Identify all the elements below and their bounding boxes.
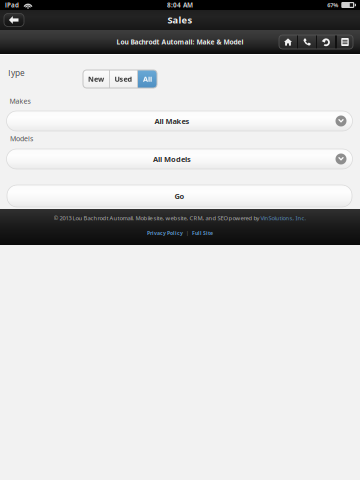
- button[interactable]: Home: [279, 35, 297, 49]
- button[interactable]: Menu: [337, 35, 353, 49]
- staticText: Lou Bachrodt Automall: Make & Model: [116, 37, 243, 47]
- staticText: All: [143, 74, 152, 84]
- staticText: Type: [7, 67, 25, 78]
- staticText: New: [88, 74, 104, 84]
- button[interactable]: Reload: [317, 35, 335, 49]
- button[interactable]: Used: [110, 70, 137, 88]
- staticText: Sales: [167, 14, 192, 26]
- button[interactable]: All Makes: [6, 111, 352, 131]
- button[interactable]: Call: [298, 35, 316, 49]
- staticText: Full Site: [192, 229, 213, 236]
- button[interactable]: Back: [4, 13, 24, 26]
- staticText: Privacy Policy: [147, 229, 183, 236]
- staticText: |: [186, 229, 189, 236]
- staticText: Models: [10, 134, 33, 143]
- staticText: Makes: [9, 96, 30, 106]
- staticText: 67%: [327, 1, 338, 9]
- staticText: Used: [114, 74, 132, 84]
- staticText: 8:04 AM: [167, 1, 193, 9]
- button[interactable]: All Models: [6, 149, 352, 169]
- staticText: VinSolutions, Inc.: [260, 214, 306, 222]
- button[interactable]: Privacy Policy: [147, 229, 183, 236]
- staticText: iPad: [5, 1, 19, 9]
- staticText: Go: [174, 191, 184, 201]
- button[interactable]: All: [138, 70, 157, 88]
- button[interactable]: VinSolutions, Inc.: [260, 214, 306, 222]
- button[interactable]: Go: [7, 185, 352, 207]
- staticText: All Models: [153, 154, 191, 164]
- staticText: All Makes: [154, 116, 189, 126]
- button[interactable]: New: [83, 70, 109, 88]
- staticText: © 2013 Lou Bachrodt Automall. Mobile sit…: [53, 214, 260, 222]
- button[interactable]: Full Site: [192, 229, 213, 236]
